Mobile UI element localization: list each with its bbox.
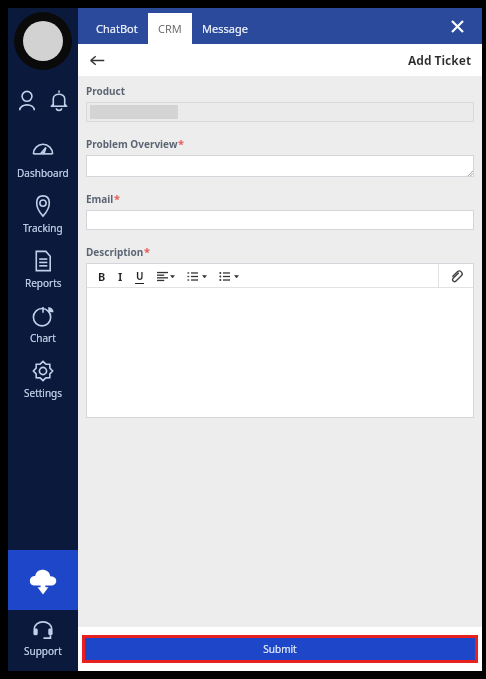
staticText: Reports	[25, 276, 62, 290]
staticText: CRM	[158, 21, 182, 36]
button[interactable]: Attach file	[438, 263, 474, 288]
staticText: B	[98, 269, 106, 284]
staticText: U	[136, 269, 144, 283]
button[interactable]	[86, 288, 474, 418]
staticText: Email	[86, 192, 114, 206]
button[interactable]: Italic	[116, 265, 125, 287]
staticText: Tracking	[23, 221, 63, 235]
button[interactable]: Align	[155, 265, 177, 287]
button[interactable]: Bold	[96, 265, 108, 287]
staticText: Dashboard	[17, 166, 69, 180]
button[interactable]: Dashboard	[8, 132, 78, 187]
button[interactable]: Back	[84, 47, 110, 73]
button[interactable]	[86, 102, 474, 122]
staticText: *	[178, 136, 184, 151]
staticText: Description	[86, 245, 144, 259]
button[interactable]	[86, 155, 474, 177]
button[interactable]: Bulleted list	[217, 265, 241, 287]
staticText: Product	[86, 84, 126, 98]
button[interactable]: Underline	[133, 265, 146, 287]
button[interactable]: Settings	[8, 352, 78, 407]
staticText: *	[114, 191, 120, 206]
staticText: Add Ticket	[408, 52, 472, 68]
button[interactable]: ChatBot	[86, 13, 148, 44]
button[interactable]: Reports	[8, 242, 78, 297]
button[interactable]: Profile avatar	[14, 12, 72, 70]
button[interactable]: Chart	[8, 297, 78, 352]
staticText: ChatBot	[96, 21, 138, 36]
staticText: Problem Overview	[86, 137, 178, 151]
button[interactable]: Close	[446, 15, 468, 37]
button[interactable]: Message	[192, 13, 258, 44]
staticText: Support	[24, 644, 62, 658]
button[interactable]: Account	[14, 88, 40, 114]
staticText: *	[144, 244, 150, 259]
button[interactable]: Downloads	[8, 550, 78, 610]
staticText: Chart	[30, 331, 56, 345]
button[interactable]: Notifications	[46, 88, 72, 114]
button[interactable]	[86, 210, 474, 230]
staticText: Submit	[263, 642, 297, 656]
staticText: Message	[202, 21, 248, 36]
staticText: Settings	[24, 386, 63, 400]
button[interactable]: CRM	[148, 13, 192, 44]
button[interactable]: Tracking	[8, 187, 78, 242]
button[interactable]: Numbered list	[185, 265, 209, 287]
button[interactable]: Support	[8, 610, 78, 665]
staticText: I	[118, 269, 123, 284]
button[interactable]: Submit	[85, 638, 475, 660]
